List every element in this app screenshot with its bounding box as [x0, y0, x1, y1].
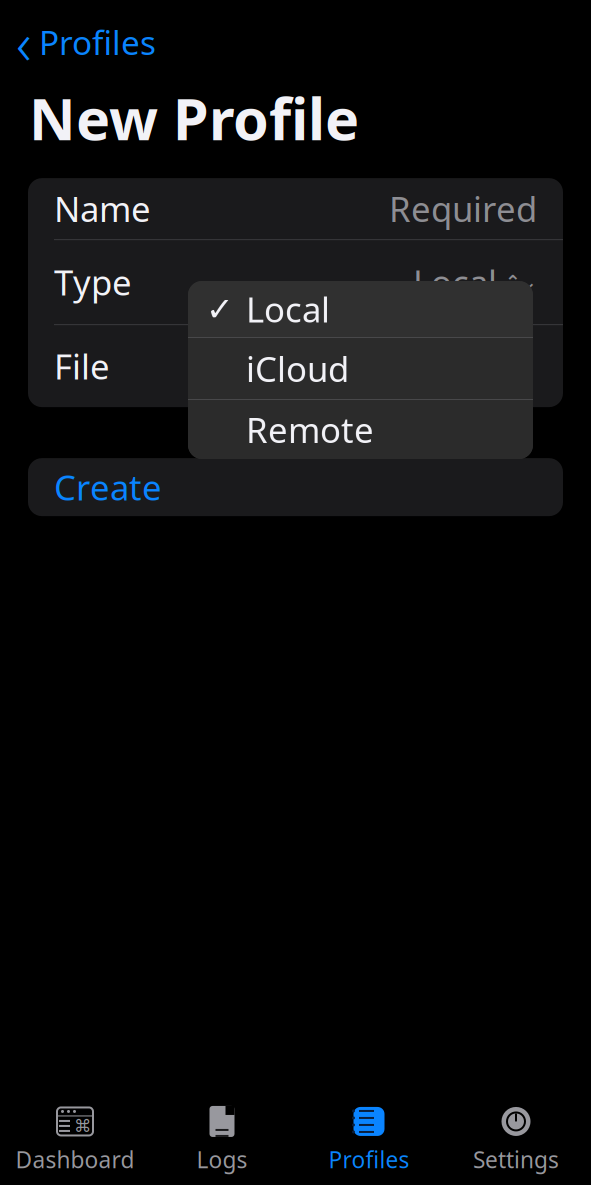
staticText: Name: [54, 186, 151, 232]
button[interactable]: Logs: [148, 1103, 295, 1177]
staticText: Profiles: [328, 1144, 409, 1174]
staticText: Dashboard: [15, 1144, 134, 1174]
button[interactable]: ‹: [0, 18, 172, 66]
button[interactable]: iCloud: [188, 338, 533, 399]
staticText: Local: [246, 286, 330, 332]
button[interactable]: Profiles: [295, 1103, 442, 1177]
staticText: Logs: [196, 1144, 247, 1174]
staticText: Create: [54, 464, 162, 510]
staticText: Profiles: [39, 20, 156, 64]
staticText: ⌃⌄: [505, 271, 537, 293]
button[interactable]: Type: [28, 240, 563, 324]
staticText: Settings: [473, 1144, 559, 1174]
staticText: New Profile: [29, 80, 359, 156]
button[interactable]: Remote: [188, 400, 533, 459]
staticText: Required: [389, 186, 537, 232]
staticText: File: [54, 343, 110, 389]
staticText: ‹: [16, 3, 32, 81]
staticText: ✓: [206, 290, 234, 328]
staticText: Local: [413, 259, 497, 305]
button[interactable]: ⌘: [1, 1103, 148, 1177]
staticText: Type: [54, 259, 132, 305]
button[interactable]: Create: [28, 458, 563, 516]
staticText: Remote: [246, 406, 374, 452]
button[interactable]: Settings: [442, 1103, 589, 1177]
button[interactable]: ✓: [188, 281, 533, 337]
staticText: ⌘: [74, 1116, 91, 1136]
staticText: iCloud: [246, 345, 349, 391]
